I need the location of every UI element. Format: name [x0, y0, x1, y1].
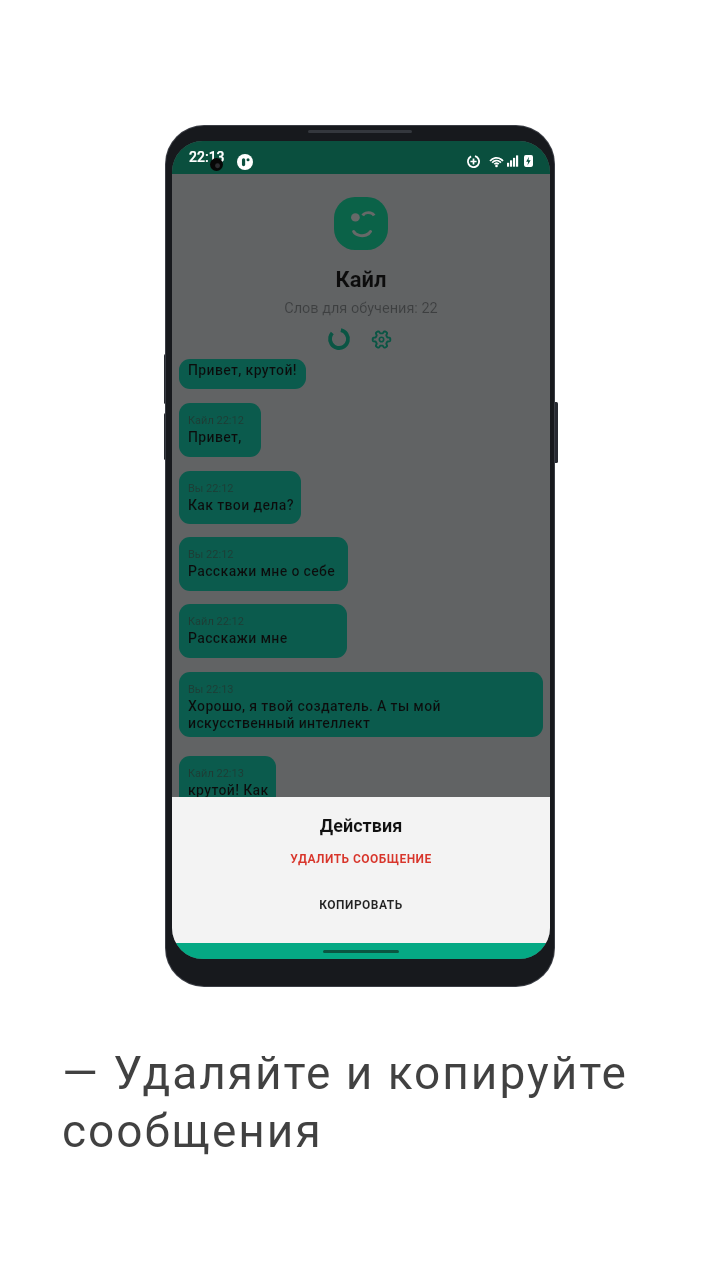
button[interactable]: Кайл 22:12: [179, 604, 347, 658]
staticText: Кайл 22:13: [188, 767, 244, 780]
staticText: УДАЛИТЬ СООБЩЕНИЕ: [172, 852, 550, 866]
staticText: Вы 22:12: [188, 548, 234, 561]
staticText: Действия: [172, 815, 550, 836]
button[interactable]: Profile picture: [334, 197, 388, 250]
button[interactable]: Кайл 22:13: [179, 756, 276, 807]
staticText: — Удаляйте и копируйте сообщения: [62, 1046, 628, 1158]
button[interactable]: Вы 22:13: [179, 672, 543, 737]
button[interactable]: Вы 22:12: [179, 537, 348, 591]
staticText: Кайл 22:12: [188, 615, 244, 628]
button[interactable]: Settings: [367, 325, 395, 353]
staticText: 22:13: [189, 149, 225, 165]
button[interactable]: Привет, крутой!: [179, 359, 306, 389]
button[interactable]: Вы 22:12: [179, 471, 301, 524]
staticText: Вы 22:13: [188, 683, 234, 696]
staticText: Кайл 22:12: [188, 414, 244, 427]
staticText: крутой! Как: [188, 782, 269, 798]
staticText: Расскажи мне о себе: [188, 563, 336, 579]
button[interactable]: УДАЛИТЬ СООБЩЕНИЕ: [172, 842, 550, 876]
button[interactable]: Refresh: [325, 325, 353, 353]
button[interactable]: КОПИРОВАТЬ: [172, 888, 550, 922]
staticText: Слов для обучения: 22: [172, 300, 550, 317]
staticText: Привет, крутой!: [188, 362, 297, 378]
staticText: Кайл: [172, 267, 550, 293]
staticText: КОПИРОВАТЬ: [172, 898, 550, 912]
staticText: Хорошо, я твой создатель. А ты мой искус…: [188, 698, 441, 732]
button[interactable]: Кайл 22:12: [179, 403, 261, 457]
staticText: Как твои дела?: [188, 497, 294, 513]
staticText: Расскажи мне: [188, 630, 288, 646]
staticText: Привет,: [188, 429, 242, 445]
staticText: Вы 22:12: [188, 482, 234, 495]
